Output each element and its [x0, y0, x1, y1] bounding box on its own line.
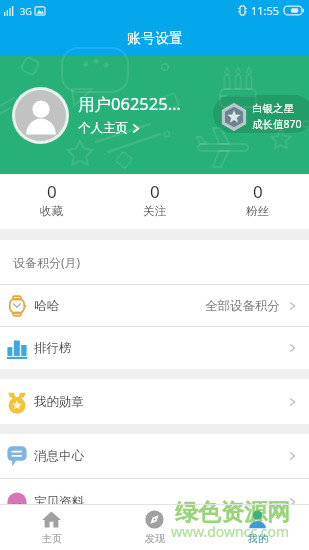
staticText: 排行榜: [34, 340, 72, 356]
staticText: 哈哈: [34, 298, 59, 314]
button[interactable]: 发现: [103, 505, 206, 550]
staticText: 3G: [20, 5, 32, 17]
staticText: 粉丝: [246, 204, 269, 218]
button[interactable]: 哈哈: [0, 285, 309, 326]
staticText: 宝贝资料: [34, 494, 84, 504]
staticText: 我的: [248, 532, 268, 545]
staticText: 0: [150, 180, 160, 203]
button[interactable]: 个人主页: [78, 120, 140, 136]
staticText: 收藏: [40, 204, 63, 218]
button[interactable]: 宝贝资料: [0, 489, 309, 504]
button[interactable]: 排行榜: [0, 327, 309, 369]
staticText: 11:55: [251, 3, 280, 18]
staticText: 消息中心: [34, 448, 84, 464]
staticText: 设备积分(月): [13, 254, 81, 270]
staticText: 主页: [42, 532, 62, 545]
button[interactable]: 头像: [12, 87, 69, 144]
other: 主页: [42, 510, 61, 529]
staticText: 关注: [143, 204, 166, 218]
button[interactable]: 白银之星: [220, 102, 302, 131]
staticText: 白银之星: [252, 102, 294, 115]
staticText: www.downcc.com: [171, 522, 290, 541]
other: 我的: [248, 510, 267, 529]
staticText: 账号设置: [127, 30, 183, 48]
staticText: 我的勋章: [34, 394, 84, 410]
staticText: 用户062525…: [78, 92, 181, 115]
staticText: 绿色资源网: [175, 498, 290, 527]
button[interactable]: 0: [206, 174, 309, 229]
staticText: 0: [253, 180, 263, 203]
staticText: 0: [47, 180, 57, 203]
button[interactable]: 消息中心: [0, 434, 309, 478]
button[interactable]: 主页: [0, 505, 103, 550]
other: 发现: [145, 510, 164, 529]
button[interactable]: 0: [103, 174, 206, 229]
staticText: 发现: [145, 532, 165, 545]
button[interactable]: 我的勋章: [0, 379, 309, 424]
staticText: 成长值870: [252, 117, 302, 131]
staticText: 全部设备积分: [205, 298, 280, 314]
staticText: 个人主页: [78, 120, 128, 136]
button[interactable]: 我的: [206, 505, 309, 550]
button[interactable]: 0: [0, 174, 103, 229]
